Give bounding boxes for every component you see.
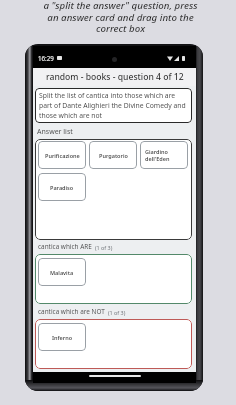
other: Home xyxy=(89,375,141,377)
staticText: a "split the answer" question, press an … xyxy=(43,0,198,35)
staticText: Paradiso xyxy=(50,184,74,191)
staticText: random - books - question 4 of 12 xyxy=(46,71,184,83)
staticText: Purificazione xyxy=(45,152,80,159)
staticText: cantica which ARE xyxy=(38,242,92,251)
button[interactable]: Malavita xyxy=(38,258,86,286)
button[interactable]: Inferno xyxy=(35,319,192,369)
button[interactable]: Giardino dell'Eden xyxy=(140,141,188,169)
staticText: cantica which are NOT xyxy=(38,307,105,316)
staticText: Purgatorio xyxy=(99,152,128,159)
button[interactable]: Paradiso xyxy=(38,173,86,201)
staticText: (1 of 3) xyxy=(108,309,126,316)
staticText: Split the list of cantica into those whi… xyxy=(39,91,189,120)
staticText: Giardino dell'Eden xyxy=(145,148,170,162)
button[interactable]: Inferno xyxy=(38,323,86,351)
staticText: Malavita xyxy=(50,269,74,276)
staticText: Answer list xyxy=(37,127,73,137)
button[interactable]: Purgatorio xyxy=(89,141,137,169)
button[interactable]: Split the list of cantica into those whi… xyxy=(35,88,192,123)
button[interactable]: Purificazione xyxy=(38,141,86,169)
button[interactable]: Malavita xyxy=(35,254,192,304)
staticText: 16:29 xyxy=(38,54,54,62)
staticText: Inferno xyxy=(52,334,73,341)
staticText: (1 of 3) xyxy=(95,244,113,251)
